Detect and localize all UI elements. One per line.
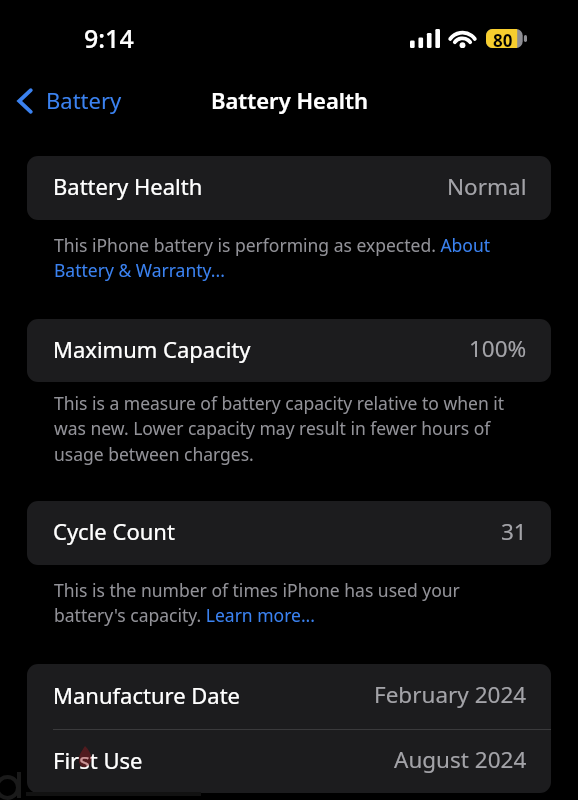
button[interactable]: Learn more <box>206 604 316 629</box>
other: Battery 80 percent <box>486 29 527 48</box>
staticText: August 2024 <box>394 744 527 775</box>
staticText: This is a measure of battery capacity re… <box>54 391 506 467</box>
button[interactable]: First Use <box>27 730 551 793</box>
staticText: 9:14 <box>84 21 134 55</box>
staticText: Battery Health <box>53 171 203 201</box>
button[interactable]: Battery <box>0 80 134 122</box>
staticText: Battery <box>46 85 122 115</box>
staticText: Cycle Count <box>53 516 175 546</box>
staticText: This is the number of times iPhone has u… <box>54 578 506 628</box>
staticText: Battery Health <box>211 85 368 115</box>
staticText: Manufacture Date <box>53 680 241 710</box>
button[interactable]: About Battery & Warranty <box>52 260 227 285</box>
staticText: 80 <box>493 29 513 48</box>
other: Cellular signal strength <box>410 29 440 48</box>
button[interactable]: Battery Health <box>27 156 551 220</box>
other: Wi-Fi connected <box>449 29 476 48</box>
staticText: This iPhone battery is performing as exp… <box>54 233 506 283</box>
button[interactable]: About Battery & Warranty <box>438 234 494 259</box>
button[interactable]: Manufacture Date <box>27 664 551 729</box>
staticText: Normal <box>447 171 527 202</box>
staticText: February 2024 <box>374 679 527 710</box>
staticText: 100% <box>469 333 527 364</box>
staticText: Maximum Capacity <box>53 334 251 364</box>
button[interactable]: Cycle Count <box>27 501 551 565</box>
staticText: 31 <box>501 516 527 547</box>
button[interactable]: Maximum Capacity <box>27 319 551 382</box>
staticText: First Use <box>53 745 143 775</box>
